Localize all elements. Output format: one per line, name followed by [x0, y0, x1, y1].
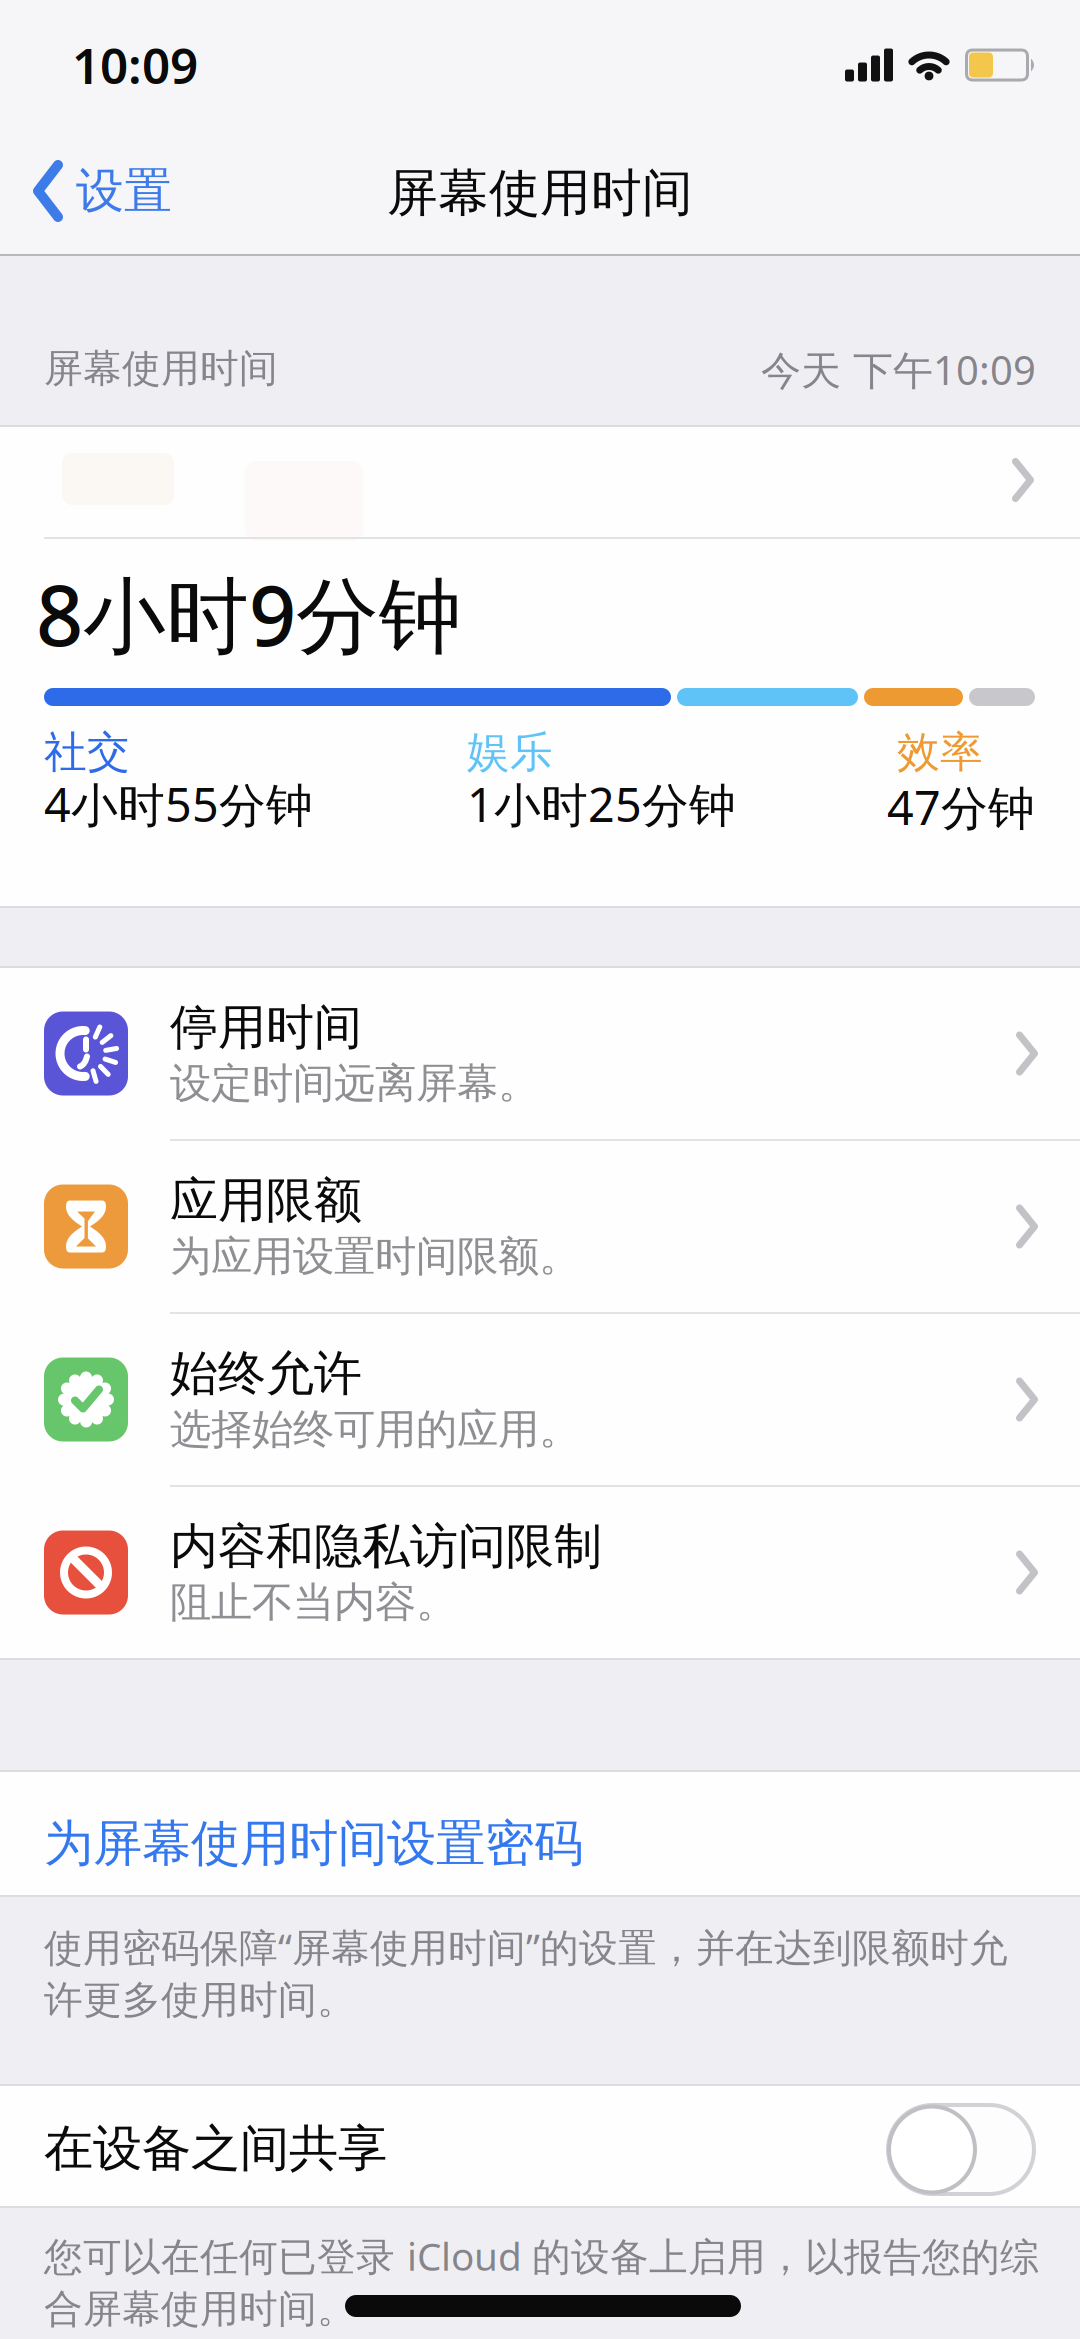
button[interactable]: 应用限额 — [0, 1141, 1080, 1312]
staticText: 在设备之间共享 — [44, 2118, 387, 2179]
staticText: 47分钟 — [887, 776, 1035, 838]
button[interactable]: 为屏幕使用时间设置密码 — [0, 1772, 1080, 1895]
staticText: 阻止不当内容。 — [170, 1577, 457, 1628]
staticText: 4小时55分钟 — [44, 773, 313, 835]
staticText: 您可以在任何已登录 iCloud 的设备上启用，以报告您的综 合屏幕使用时间。 — [44, 2230, 1039, 2333]
staticText: 娱乐 — [467, 726, 553, 778]
staticText: 效率 — [897, 726, 983, 778]
staticText: 设定时间远离屏幕。 — [170, 1058, 539, 1109]
staticText: 应用限额 — [170, 1171, 362, 1230]
staticText: 屏幕使用时间 — [387, 162, 693, 224]
staticText: 内容和隐私访问限制 — [170, 1517, 602, 1576]
button[interactable]: 始终允许 — [0, 1314, 1080, 1485]
staticText: 屏幕使用时间 — [44, 345, 278, 392]
staticText: 10:09 — [72, 32, 198, 97]
staticText: 为应用设置时间限额。 — [170, 1231, 580, 1282]
button[interactable]: 停用时间 — [0, 968, 1080, 1139]
button[interactable]: 在设备之间共享 — [886, 2096, 1036, 2196]
staticText: 为屏幕使用时间设置密码 — [44, 1813, 583, 1874]
button[interactable]: 设置 — [0, 0, 172, 222]
staticText: 社交 — [44, 726, 130, 778]
staticText: 今天 下午10:09 — [761, 343, 1036, 396]
staticText: 选择始终可用的应用。 — [170, 1404, 580, 1455]
button[interactable]: 8小时9分钟 — [0, 425, 1080, 908]
staticText: 1小时25分钟 — [467, 773, 736, 835]
staticText: 使用密码保障“屏幕使用时间”的设置，并在达到限额时允 许更多使用时间。 — [44, 1921, 1008, 2024]
staticText: 8小时9分钟 — [36, 559, 462, 669]
staticText: 停用时间 — [170, 998, 362, 1057]
button[interactable]: 内容和隐私访问限制 — [0, 1487, 1080, 1658]
staticText: 设置 — [76, 161, 172, 220]
staticText: 始终允许 — [170, 1344, 362, 1403]
